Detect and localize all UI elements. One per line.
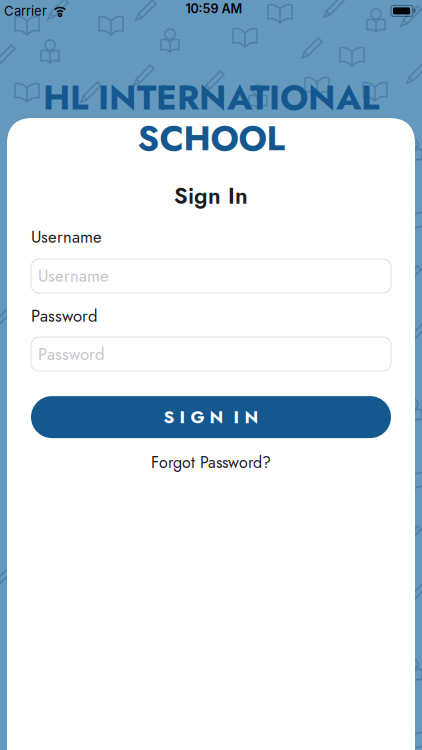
- button[interactable]: Password: [31, 337, 391, 371]
- staticText: Username: [31, 225, 102, 249]
- staticText: Username: [38, 264, 109, 288]
- staticText: SCHOOL: [137, 114, 284, 163]
- staticText: HL INTERNATIONAL: [43, 73, 379, 122]
- staticText: Sign In: [174, 180, 248, 212]
- staticText: Password: [38, 342, 105, 366]
- staticText: Forgot Password?: [151, 451, 271, 474]
- staticText: 10:59 AM: [185, 1, 242, 16]
- button[interactable]: Forgot Password?: [31, 451, 391, 474]
- staticText: Password: [31, 304, 98, 328]
- staticText: S I G N I N: [163, 405, 258, 429]
- button[interactable]: Username: [31, 259, 391, 293]
- button[interactable]: S I G N I N: [31, 396, 391, 438]
- staticText: Carrier: [4, 3, 47, 19]
